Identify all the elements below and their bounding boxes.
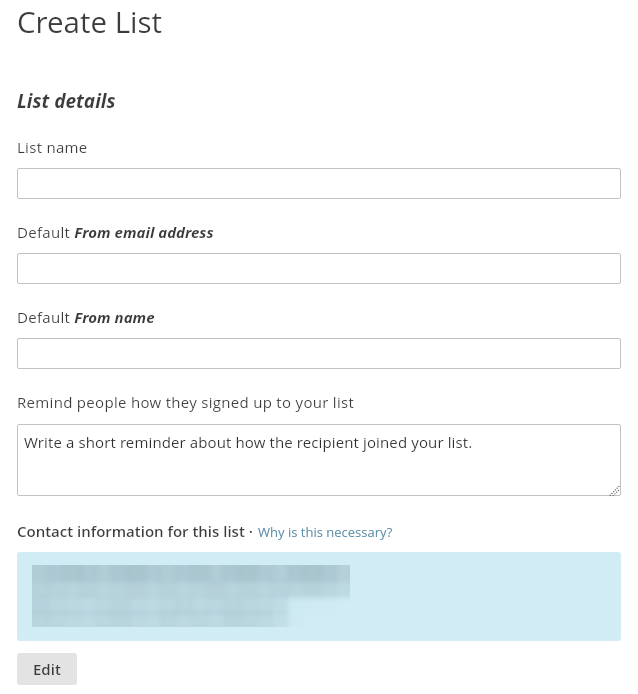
staticText: Default From email address [17, 222, 214, 242]
button[interactable]: Default From email address [17, 253, 621, 284]
staticText: Default From name [17, 307, 155, 327]
button[interactable]: Why is this necessary? [258, 523, 393, 541]
staticText: Create List [17, 1, 162, 41]
staticText: Remind people how they signed up to your… [17, 392, 355, 412]
staticText: Edit [33, 659, 61, 679]
staticText: Write a short reminder about how the rec… [24, 432, 473, 452]
button[interactable]: Default From name [17, 338, 621, 369]
staticText: List name [17, 137, 88, 157]
button[interactable]: Signup reminder [17, 424, 621, 496]
staticText: List details [17, 88, 116, 114]
button[interactable]: Edit [17, 653, 77, 685]
button[interactable]: List name [17, 168, 621, 199]
staticText: Contact information for this list · [17, 521, 253, 541]
